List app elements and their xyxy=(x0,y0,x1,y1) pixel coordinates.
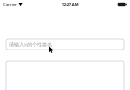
staticText: 12:27 AM xyxy=(62,2,79,7)
button[interactable]: 请输入x的个性签名 xyxy=(6,39,124,50)
staticText: 请输入x的个性签名 xyxy=(9,41,52,48)
staticText: Carrier xyxy=(3,2,17,7)
